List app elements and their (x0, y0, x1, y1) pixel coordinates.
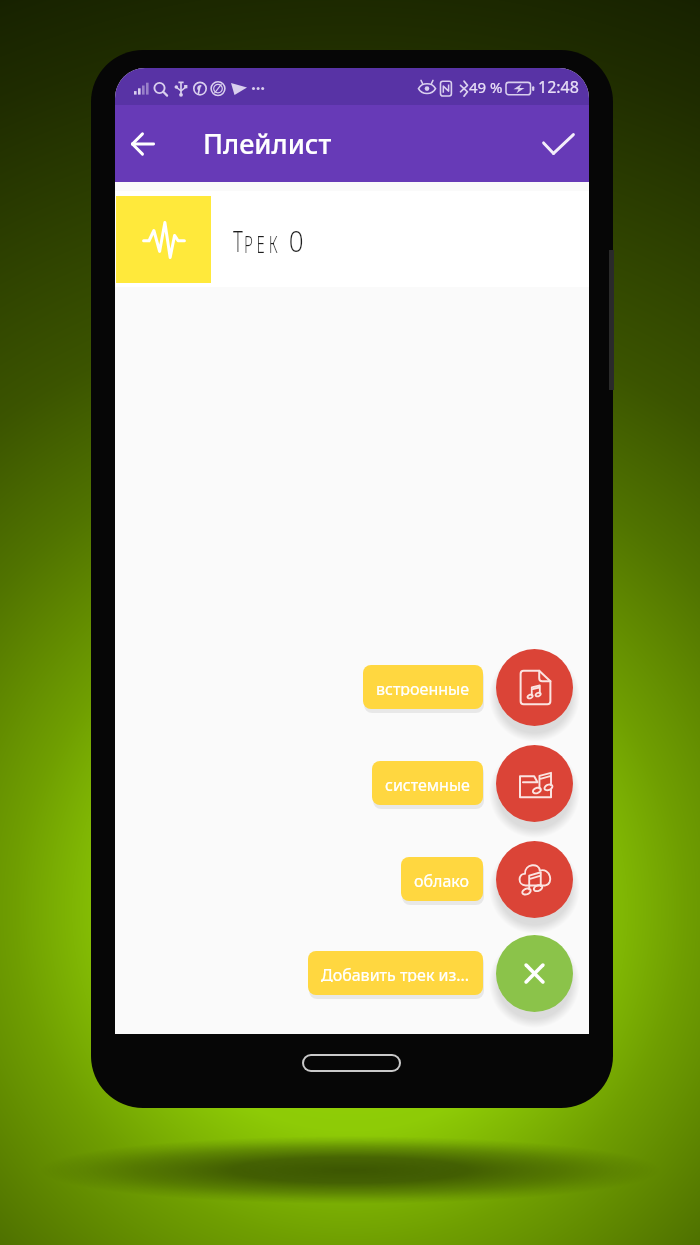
staticText: облако (414, 870, 470, 888)
staticText: встроенные (377, 682, 471, 700)
staticText: Добавить трек из... (322, 968, 471, 986)
button[interactable]: Done (534, 120, 582, 168)
button[interactable]: облако (401, 857, 483, 901)
button[interactable]: встроенные (496, 649, 573, 726)
button[interactable]: системные (372, 761, 483, 805)
button[interactable]: облако (496, 841, 573, 918)
staticText: встроенные (376, 678, 470, 696)
button[interactable]: Back (118, 119, 167, 168)
staticText: системные (386, 778, 471, 796)
button[interactable]: встроенные (363, 665, 483, 709)
button[interactable]: Добавить трек из... (496, 935, 573, 1012)
staticText: РЕК (244, 228, 282, 260)
staticText: Т (233, 221, 244, 260)
button[interactable]: системные (496, 745, 573, 822)
button[interactable]: Добавить трек из... (308, 951, 483, 995)
staticText: 12:48 (538, 76, 579, 98)
staticText: Добавить трек из... (321, 964, 470, 982)
staticText: Плейлист (203, 125, 332, 162)
button[interactable]: Т (115, 191, 589, 287)
staticText: 0 (289, 221, 304, 260)
staticText: облако (415, 874, 471, 892)
staticText: 49 % (469, 77, 503, 97)
staticText: системные (385, 774, 470, 792)
